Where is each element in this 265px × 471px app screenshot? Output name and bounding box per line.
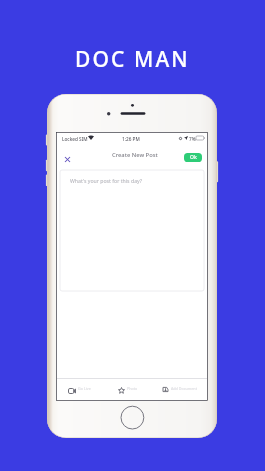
staticText: Create New Post [112, 151, 158, 159]
staticText: Locked SIM [62, 136, 88, 142]
staticText: Ok [190, 154, 197, 161]
staticText: DOC MAN [75, 45, 190, 74]
staticText: Photo [127, 386, 138, 391]
button[interactable]: Ok [184, 153, 202, 162]
staticText: Add Document [171, 386, 197, 391]
staticText: Go Live [78, 386, 91, 391]
staticText: 1:26 PM [122, 136, 140, 142]
button[interactable]: Add Document [158, 379, 194, 400]
button[interactable]: Go Live [65, 379, 99, 400]
staticText: 7% [189, 136, 196, 142]
staticText: What's your post for this day? [70, 177, 143, 184]
button[interactable]: Photo [115, 379, 143, 400]
button[interactable]: Close [59, 151, 75, 167]
